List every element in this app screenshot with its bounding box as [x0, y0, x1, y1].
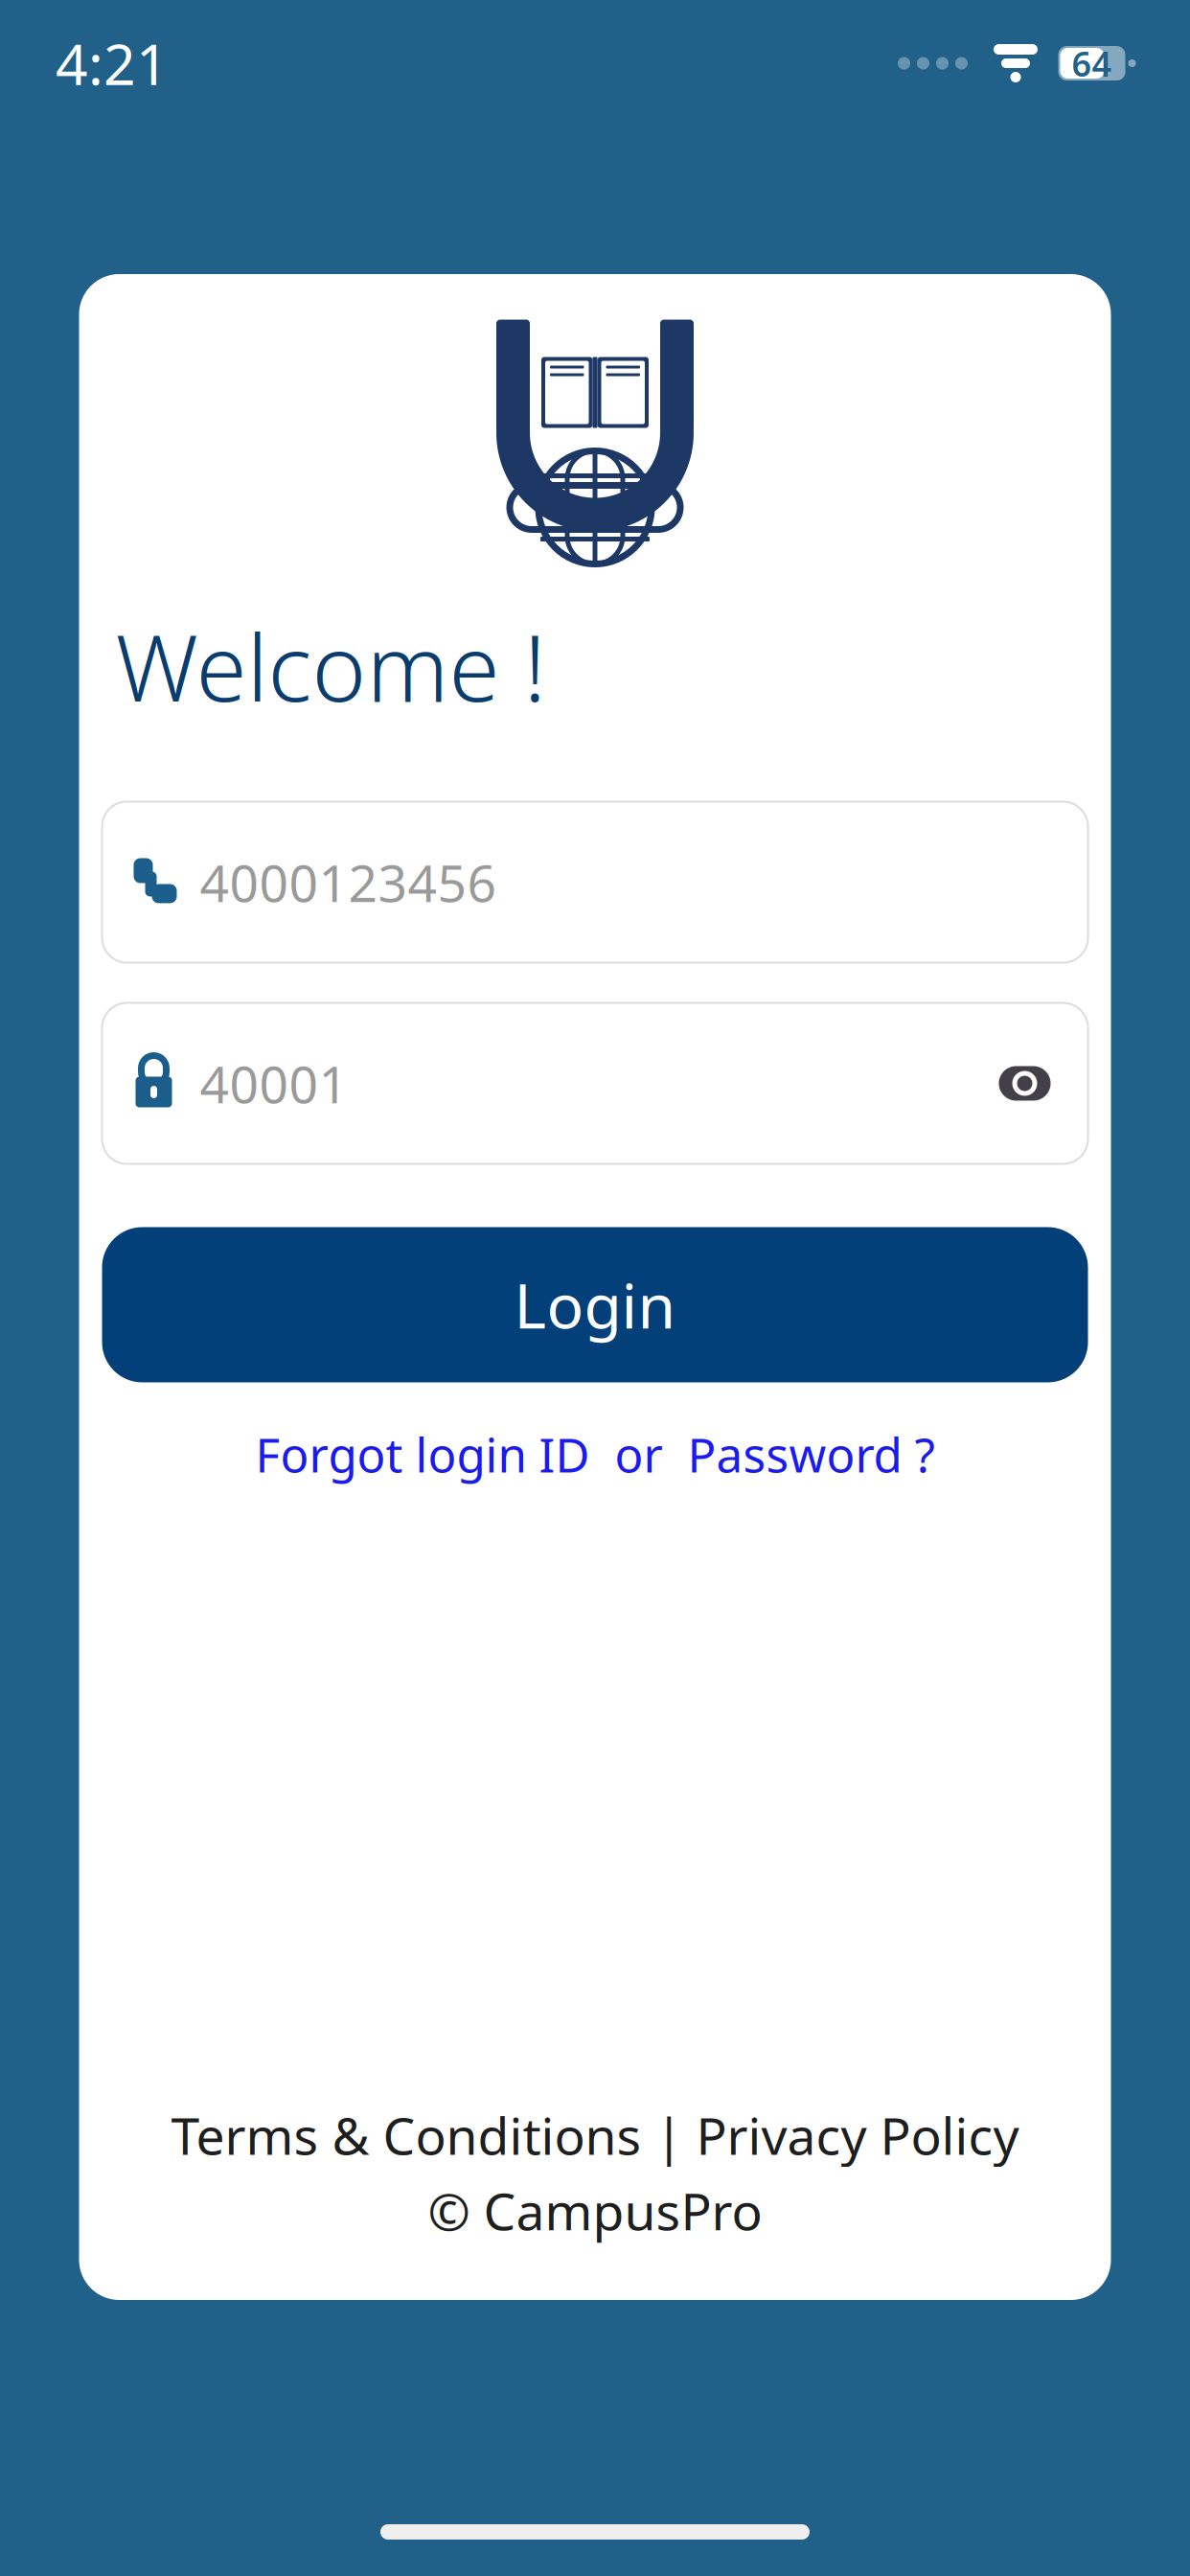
button[interactable]: 40001 [102, 1003, 1088, 1164]
staticText: Welcome ! [115, 605, 547, 727]
staticText: 40001 [200, 1049, 348, 1117]
staticText: Login [514, 1264, 676, 1345]
button[interactable]: Show password [977, 1047, 1073, 1120]
staticText: Terms & Conditions | Privacy Policy [171, 2101, 1019, 2169]
staticText: Forgot login ID or Password ? [255, 1423, 935, 1485]
button[interactable]: 4000123456 [102, 802, 1088, 963]
staticText: 4000123456 [200, 848, 497, 916]
staticText: 4:21 [56, 26, 169, 101]
staticText: 64 [1072, 40, 1112, 86]
staticText: © CampusPro [428, 2177, 762, 2244]
button[interactable]: Forgot login ID or Password ? [236, 1409, 954, 1499]
button[interactable]: Terms & Conditions | Privacy Policy [171, 2101, 1019, 2169]
button[interactable]: Login [102, 1227, 1088, 1382]
